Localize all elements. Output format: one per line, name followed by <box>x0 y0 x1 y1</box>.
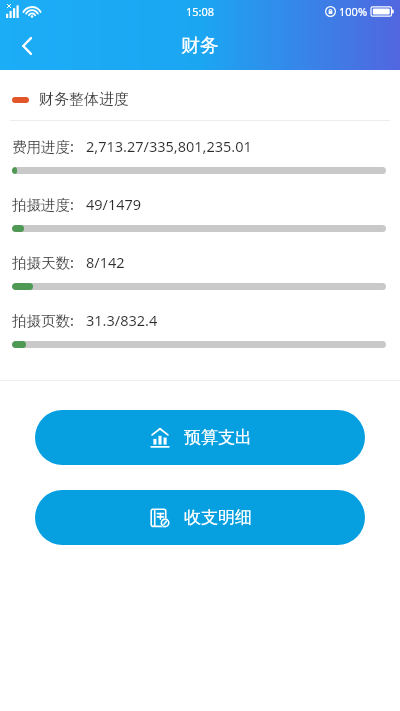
staticText: 31.3/832.4 <box>86 310 158 330</box>
staticText: 拍摄进度: <box>12 194 74 214</box>
staticText: 拍摄页数: <box>12 310 74 330</box>
staticText: 2,713.27/335,801,235.01 <box>86 136 252 156</box>
button[interactable]: 收支明细 <box>35 490 365 545</box>
staticText: 收支明细 <box>184 507 252 528</box>
button[interactable]: Back <box>4 23 50 69</box>
staticText: 拍摄天数: <box>12 252 74 272</box>
staticText: 预算支出 <box>184 427 252 448</box>
staticText: 15:08 <box>186 4 215 19</box>
staticText: 100% <box>339 4 368 19</box>
staticText: 8/142 <box>86 252 125 272</box>
staticText: 49/1479 <box>86 194 142 214</box>
button[interactable]: 预算支出 <box>35 410 365 465</box>
staticText: 财务整体进度 <box>39 90 129 109</box>
staticText: 费用进度: <box>12 136 74 156</box>
staticText: 财务 <box>181 34 219 58</box>
